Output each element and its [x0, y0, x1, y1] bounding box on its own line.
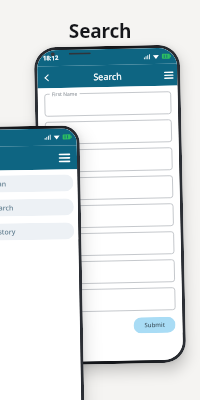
- button[interactable]: First Name: [45, 92, 171, 116]
- staticText: Submit: [144, 321, 166, 329]
- button[interactable]: [47, 204, 173, 228]
- button[interactable]: Reference: [48, 232, 174, 256]
- button[interactable]: Menu: [55, 148, 73, 167]
- button[interactable]: Back: [37, 68, 55, 86]
- button[interactable]: Scan: [0, 174, 74, 193]
- staticText: Reference: [53, 242, 79, 249]
- button[interactable]: [46, 176, 173, 200]
- staticText: Search: [0, 203, 14, 214]
- button[interactable]: [45, 120, 172, 144]
- button[interactable]: [49, 288, 175, 312]
- staticText: Search: [0, 18, 200, 44]
- staticText: Search: [93, 70, 122, 82]
- staticText: Reference: [53, 270, 79, 277]
- button[interactable]: Submit: [133, 317, 176, 334]
- staticText: Scan: [0, 179, 7, 190]
- staticText: History: [0, 227, 16, 238]
- button[interactable]: Menu: [159, 66, 177, 84]
- button[interactable]: Reference: [48, 260, 175, 284]
- button[interactable]: [46, 148, 172, 172]
- staticText: 18:12: [43, 54, 59, 62]
- button[interactable]: History: [0, 222, 74, 241]
- button[interactable]: Search: [0, 198, 74, 217]
- staticText: First Name: [52, 91, 78, 98]
